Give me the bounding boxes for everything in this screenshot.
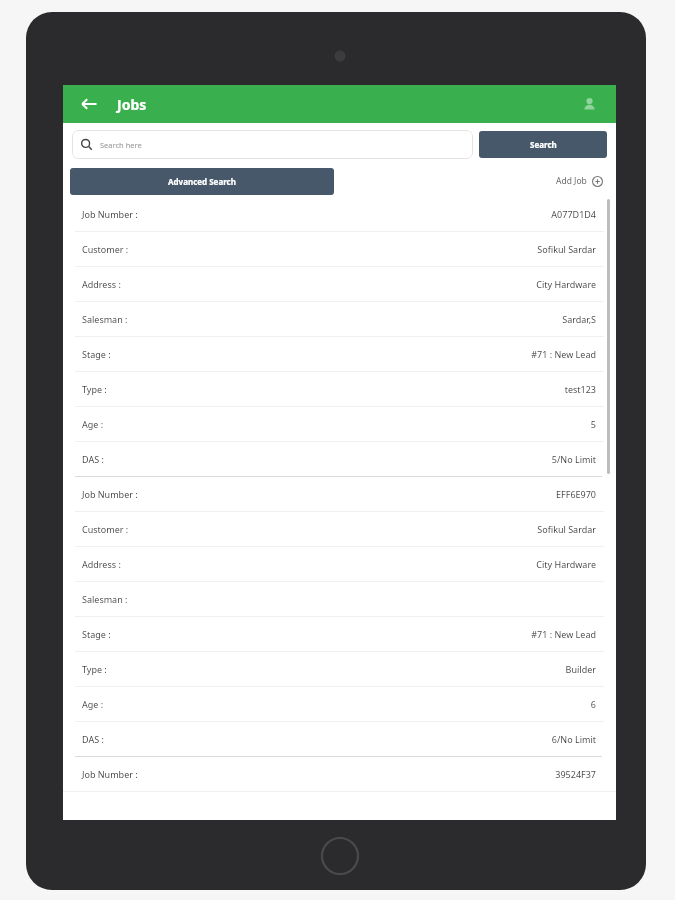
button[interactable]: Advanced Search (70, 168, 334, 195)
staticText: Sardar,S (562, 313, 596, 325)
staticText: City Hardware (536, 558, 596, 570)
button[interactable]: Search (479, 131, 607, 158)
staticText: #71 : New Lead (531, 628, 596, 640)
staticText: Sofikul Sardar (537, 243, 596, 255)
staticText: Add Job (556, 175, 587, 187)
staticText: Salesman : (82, 593, 128, 605)
staticText: Job Number : (82, 208, 138, 220)
staticText: Age : (82, 418, 104, 430)
staticText: Age : (82, 698, 104, 710)
staticText: Customer : (82, 243, 129, 255)
staticText: Address : (82, 558, 121, 570)
staticText: City Hardware (536, 278, 596, 290)
staticText: Search (530, 139, 557, 150)
button[interactable]: Job Number : (63, 477, 616, 756)
button[interactable]: Account (574, 89, 604, 119)
staticText: 6 (590, 698, 596, 710)
button[interactable]: Job Number : (63, 197, 616, 476)
button[interactable]: Back (73, 88, 105, 120)
staticText: Advanced Search (168, 176, 236, 187)
staticText: Job Number : (82, 768, 138, 780)
staticText: 5/No Limit (551, 453, 596, 465)
staticText: #71 : New Lead (531, 348, 596, 360)
staticText: Sofikul Sardar (537, 523, 596, 535)
staticText: Search here (100, 140, 142, 150)
staticText: EFF6E970 (556, 488, 596, 500)
staticText: Salesman : (82, 313, 128, 325)
button[interactable]: Job Number : (63, 757, 616, 791)
staticText: Stage : (82, 348, 111, 360)
staticText: Customer : (82, 523, 129, 535)
staticText: A077D1D4 (551, 208, 596, 220)
button[interactable]: Search here (72, 130, 473, 159)
staticText: Type : (82, 383, 107, 395)
staticText: DAS : (82, 733, 104, 745)
staticText: DAS : (82, 453, 104, 465)
staticText: 5 (590, 418, 596, 430)
button[interactable]: Add Job (550, 171, 609, 191)
staticText: Builder (565, 663, 596, 675)
staticText: Job Number : (82, 488, 138, 500)
staticText: Type : (82, 663, 107, 675)
staticText: Address : (82, 278, 121, 290)
staticText: 6/No Limit (551, 733, 596, 745)
staticText: Jobs (117, 95, 147, 114)
staticText: Stage : (82, 628, 111, 640)
staticText: test123 (564, 383, 596, 395)
staticText: 39524F37 (555, 768, 596, 780)
